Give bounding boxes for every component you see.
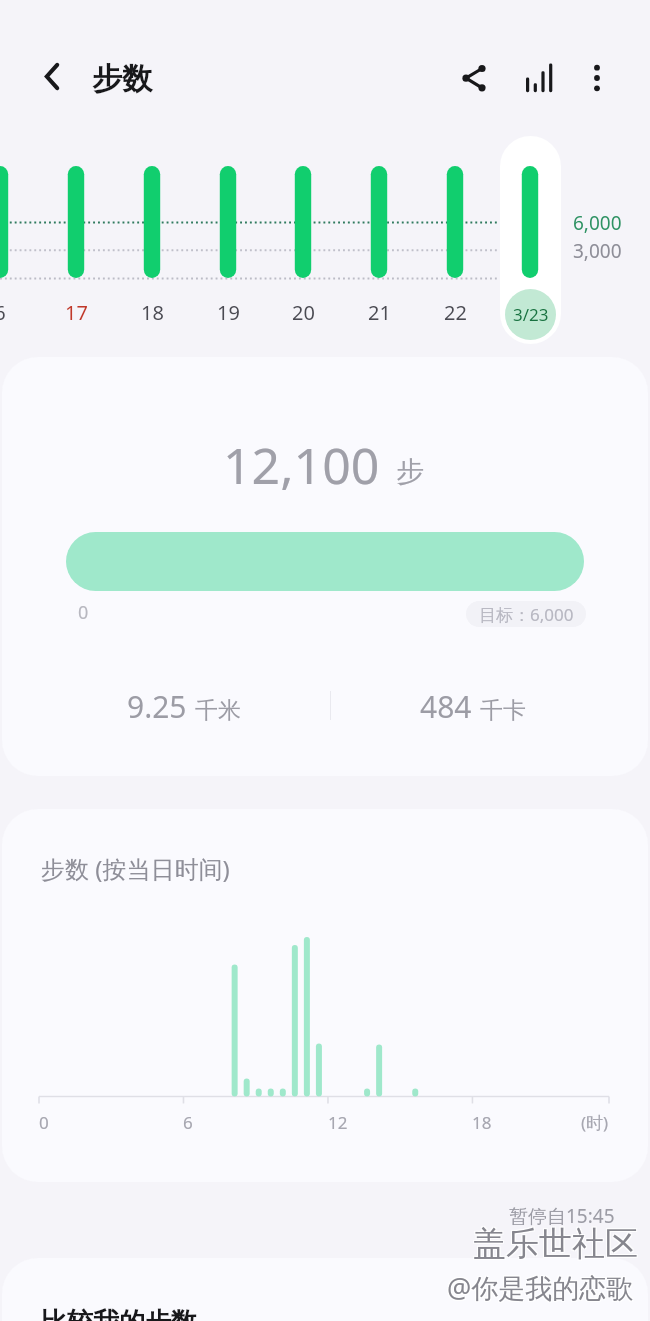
staticText: 6,000 — [573, 210, 622, 236]
staticText: 9.25 — [127, 686, 187, 727]
staticText: 步数 (按当日时间) — [41, 852, 230, 885]
button[interactable] — [66, 532, 584, 591]
staticText: 18 — [141, 299, 164, 326]
staticText: 12,100 — [223, 431, 380, 499]
staticText: 3,000 — [573, 238, 622, 264]
staticText: 0 — [78, 600, 89, 625]
staticText: 盖乐世社区 — [474, 1224, 639, 1266]
staticText: (时) — [581, 1111, 609, 1134]
staticText: 17 — [65, 299, 88, 326]
staticText: 盖乐世社区 — [473, 1223, 638, 1265]
staticText: 18 — [472, 1111, 492, 1134]
button[interactable]: Back — [26, 48, 78, 100]
staticText: 盖乐世社区 — [472, 1224, 637, 1266]
button[interactable]: Chart — [513, 52, 565, 104]
staticText: 12 — [328, 1111, 348, 1134]
staticText: 盖乐世社区 — [472, 1222, 637, 1264]
staticText: 盖乐世社区 — [474, 1222, 639, 1264]
staticText: 步 — [396, 454, 424, 489]
button[interactable]: 17 — [36, 299, 116, 326]
button[interactable]: 18 — [112, 299, 192, 326]
staticText: 20 — [292, 299, 315, 326]
button[interactable]: 19 — [188, 299, 268, 326]
staticText: 千米 — [195, 696, 241, 725]
button[interactable] — [500, 136, 561, 344]
staticText: @你是我的恋歌 — [448, 1268, 635, 1305]
staticText: 6 — [0, 299, 6, 326]
staticText: 21 — [368, 299, 391, 326]
button[interactable]: 21 — [339, 299, 419, 326]
button[interactable]: 6 — [0, 299, 40, 326]
button[interactable]: 3/23 — [505, 289, 556, 340]
staticText: 6 — [183, 1111, 193, 1134]
staticText: 千卡 — [480, 696, 526, 725]
button[interactable]: 20 — [263, 299, 343, 326]
staticText: 比较我的步数 — [41, 1306, 197, 1321]
staticText: 0 — [39, 1111, 49, 1134]
button[interactable]: More options — [571, 52, 623, 104]
staticText: 19 — [217, 299, 240, 326]
button[interactable]: Share — [447, 51, 500, 104]
staticText: 484 — [420, 686, 472, 727]
staticText: 暂停自15:45 — [509, 1203, 615, 1229]
staticText: 步数 — [92, 60, 152, 98]
staticText: @你是我的恋歌 — [448, 1270, 635, 1307]
button[interactable]: 比较我的步数 — [41, 1306, 197, 1321]
staticText: 22 — [444, 299, 467, 326]
staticText: 3/23 — [513, 303, 549, 326]
staticText: @你是我的恋歌 — [447, 1269, 634, 1306]
staticText: 目标：6,000 — [479, 603, 574, 626]
staticText: @你是我的恋歌 — [446, 1270, 633, 1307]
staticText: @你是我的恋歌 — [446, 1268, 633, 1305]
button[interactable]: 22 — [415, 299, 495, 326]
